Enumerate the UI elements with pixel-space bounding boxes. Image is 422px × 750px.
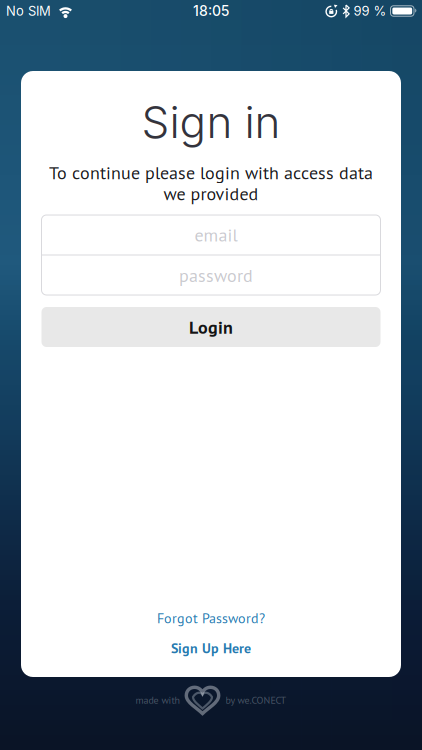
staticText: Sign in bbox=[141, 96, 280, 148]
button[interactable]: Sign Up Here bbox=[171, 638, 251, 658]
staticText: No SIM bbox=[6, 3, 51, 19]
staticText: by we.CONECT bbox=[225, 693, 286, 706]
button[interactable]: email bbox=[41, 215, 380, 254]
staticText: To continue please login with access dat… bbox=[49, 161, 373, 184]
staticText: we provided bbox=[163, 182, 258, 205]
staticText: email bbox=[194, 223, 237, 246]
button[interactable]: password bbox=[41, 255, 380, 295]
staticText: 99 % bbox=[353, 3, 386, 19]
staticText: Login bbox=[189, 315, 233, 339]
staticText: password bbox=[179, 264, 253, 287]
button[interactable]: Forgot Password? bbox=[157, 608, 265, 628]
staticText: Forgot Password? bbox=[157, 609, 265, 627]
staticText: 18:05 bbox=[193, 3, 229, 19]
staticText: made with bbox=[135, 693, 179, 706]
staticText: Sign Up Here bbox=[171, 639, 251, 657]
button[interactable]: Login bbox=[41, 307, 380, 347]
